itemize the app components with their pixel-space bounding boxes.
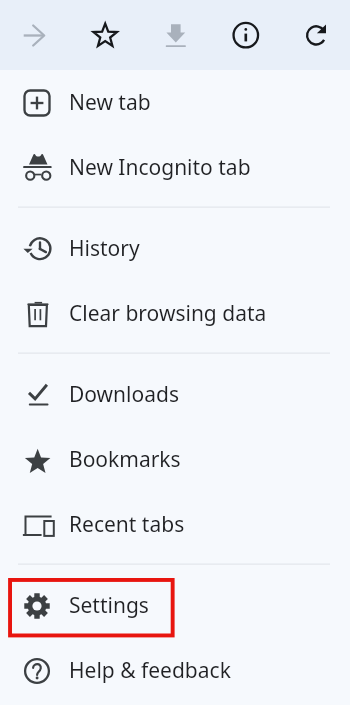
staticText: Settings — [69, 591, 149, 620]
button[interactable]: Download page — [140, 0, 210, 70]
button[interactable]: Clear browsing data — [0, 281, 350, 346]
staticText: New Incognito tab — [69, 153, 251, 182]
button[interactable]: Settings — [0, 573, 350, 638]
staticText: History — [69, 234, 140, 263]
staticText: Help & feedback — [69, 656, 231, 685]
staticText: New tab — [69, 88, 151, 117]
staticText: Bookmarks — [69, 445, 181, 474]
staticText: Clear browsing data — [69, 299, 267, 328]
button[interactable]: New tab — [0, 70, 350, 135]
button[interactable]: Refresh — [280, 0, 350, 70]
button[interactable]: New Incognito tab — [0, 135, 350, 200]
staticText: Downloads — [69, 380, 179, 409]
button[interactable]: Help & feedback — [0, 638, 350, 703]
staticText: Recent tabs — [69, 510, 185, 539]
button[interactable]: Forward — [0, 0, 70, 70]
button[interactable]: Page info — [210, 0, 280, 70]
button[interactable]: History — [0, 216, 350, 281]
button[interactable]: Recent tabs — [0, 492, 350, 557]
button[interactable]: Downloads — [0, 362, 350, 427]
button[interactable]: Bookmarks — [0, 427, 350, 492]
button[interactable]: Bookmark this page — [70, 0, 140, 70]
